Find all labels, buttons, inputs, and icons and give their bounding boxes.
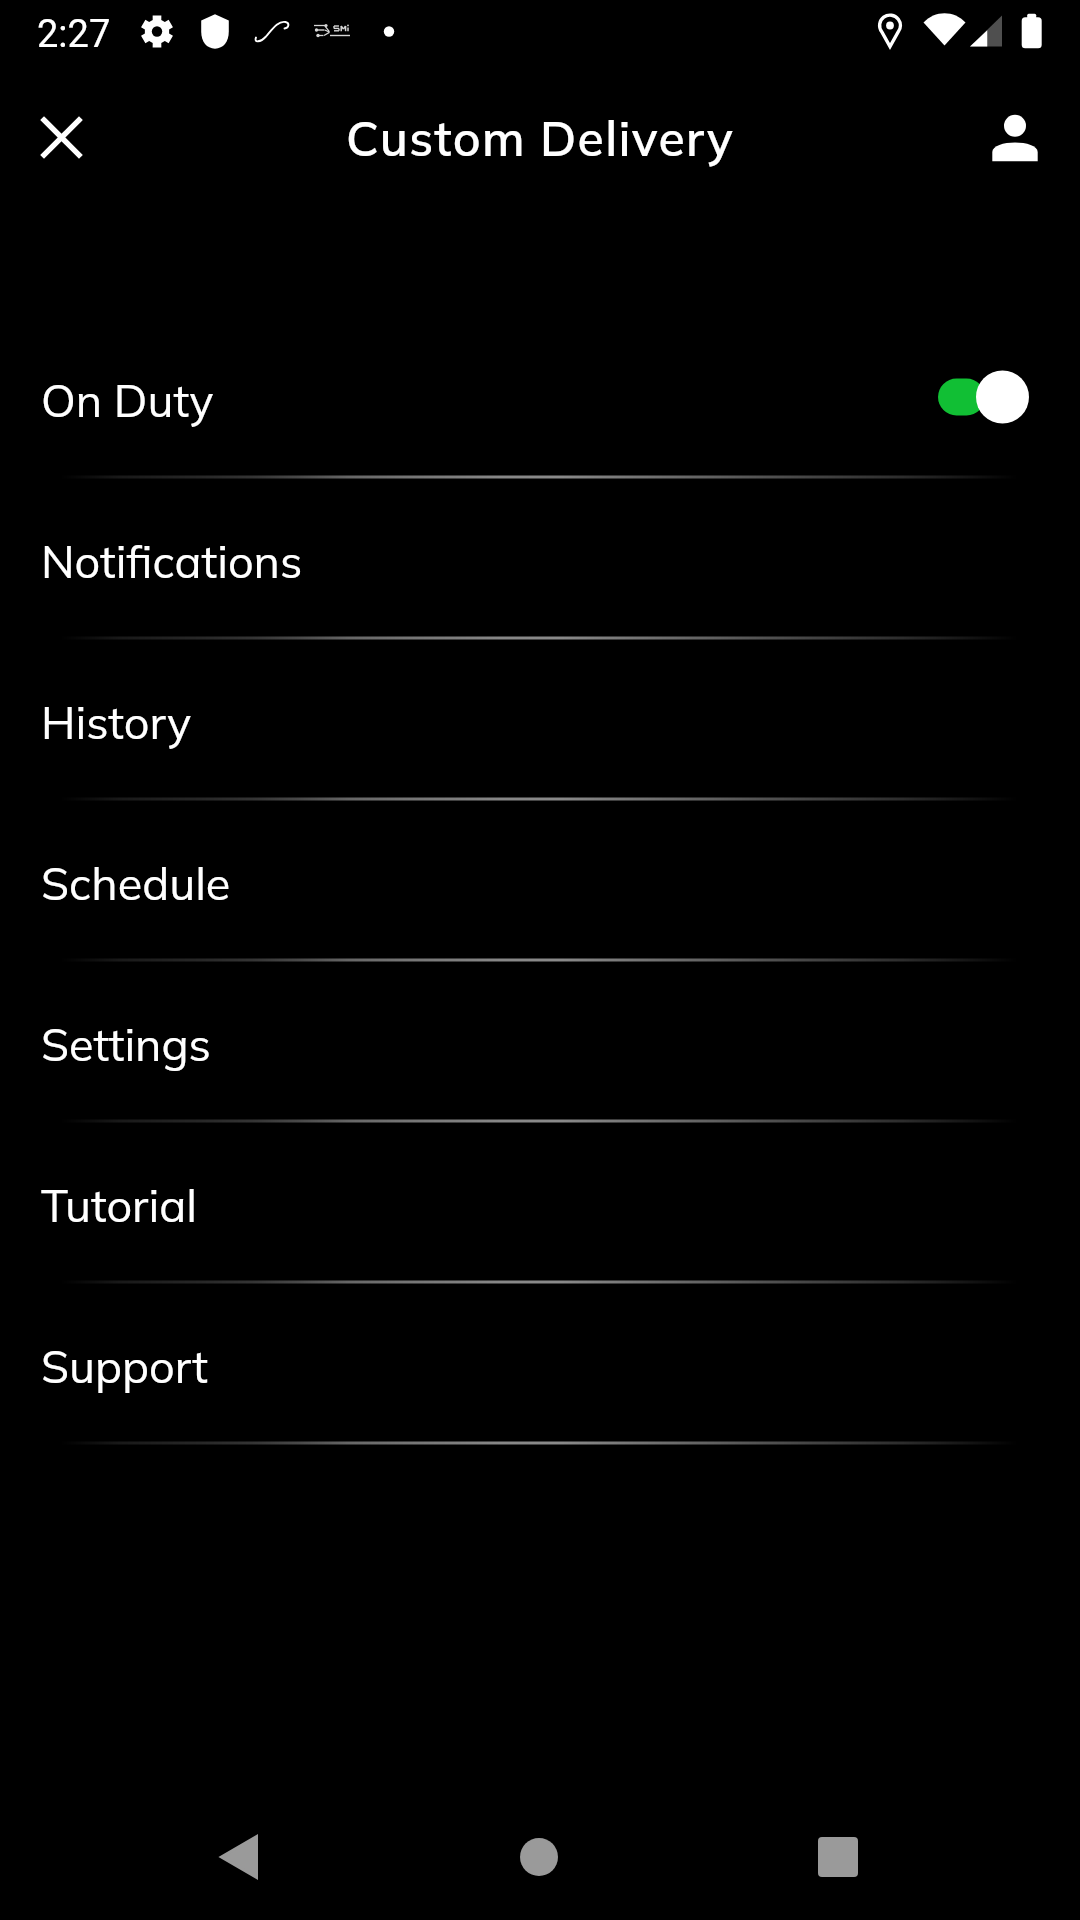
button[interactable]: On Duty toggle [938, 369, 1030, 425]
staticText: Custom Delivery [0, 108, 1080, 168]
staticText: 2:27 [37, 12, 111, 57]
staticText: Notifications [41, 533, 303, 589]
button[interactable]: Recent apps [778, 1797, 898, 1917]
button[interactable]: Support [0, 1282, 1080, 1443]
button[interactable]: On Duty [0, 316, 1080, 477]
button[interactable]: Notifications [0, 477, 1080, 638]
staticText: Schedule [41, 855, 231, 911]
staticText: History [41, 694, 192, 750]
staticText: On Duty [41, 372, 214, 428]
button[interactable]: Settings [0, 960, 1080, 1121]
staticText: Support [41, 1338, 208, 1394]
button[interactable]: Close [17, 93, 105, 181]
button[interactable]: Back [179, 1797, 299, 1917]
button[interactable]: Tutorial [0, 1121, 1080, 1282]
button[interactable]: History [0, 638, 1080, 799]
button[interactable]: Home [479, 1797, 599, 1917]
staticText: Tutorial [41, 1177, 197, 1233]
button[interactable]: Schedule [0, 799, 1080, 960]
button[interactable]: Account [971, 93, 1059, 181]
staticText: Settings [41, 1016, 211, 1072]
